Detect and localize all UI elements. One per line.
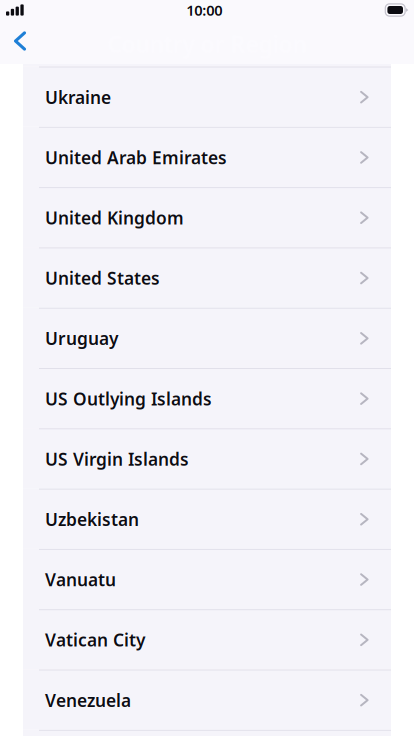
button[interactable]: Venezuela [23, 669, 391, 730]
button[interactable]: Back [0, 24, 38, 64]
button[interactable]: Uruguay [23, 308, 391, 368]
button[interactable]: US Outlying Islands [23, 368, 391, 428]
button[interactable]: United Arab Emirates [23, 127, 391, 187]
button[interactable]: US Virgin Islands [23, 428, 391, 489]
button[interactable]: Vatican City [23, 609, 391, 669]
staticText: United States [45, 266, 160, 289]
staticText: Venezuela [45, 689, 131, 712]
button[interactable]: Uzbekistan [23, 489, 391, 549]
staticText: Uzbekistan [45, 508, 139, 531]
button[interactable]: Vietnam [23, 730, 391, 736]
button[interactable]: United States [23, 247, 391, 308]
button[interactable]: Vanuatu [23, 549, 391, 609]
staticText: 10:00 [186, 0, 222, 20]
button[interactable]: United Kingdom [23, 187, 391, 247]
staticText: Ukraine [45, 86, 111, 109]
staticText: US Outlying Islands [45, 387, 212, 410]
staticText: Vanuatu [45, 568, 116, 591]
staticText: Uruguay [45, 327, 118, 350]
button[interactable]: Ukraine [23, 66, 391, 127]
staticText: Vatican City [45, 628, 145, 651]
staticText: US Virgin Islands [45, 447, 189, 470]
staticText: United Kingdom [45, 206, 184, 229]
staticText: United Arab Emirates [45, 146, 227, 169]
